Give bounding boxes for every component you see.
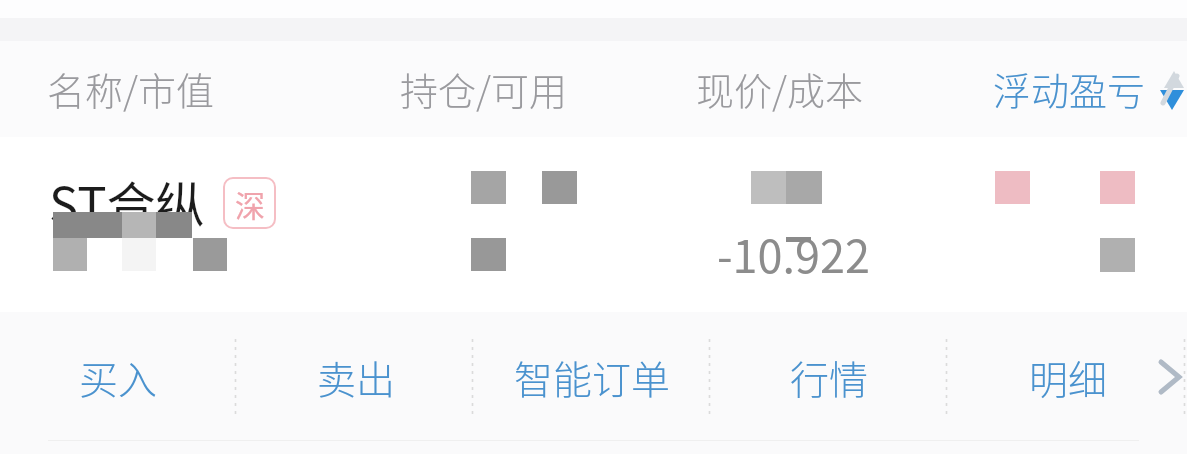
staticText: 卖出	[317, 349, 396, 405]
button[interactable]: 持仓/可用	[363, 45, 640, 135]
staticText: ST合纵	[49, 166, 205, 237]
button[interactable]: 智能订单	[474, 316, 711, 438]
other: Sort by profit	[1160, 70, 1184, 111]
staticText: 明细	[1029, 349, 1108, 405]
staticText: 浮动盈亏	[993, 61, 1146, 116]
button[interactable]: 卖出	[238, 316, 474, 438]
staticText: -10.922	[717, 221, 871, 286]
button[interactable]: 行情	[711, 316, 948, 438]
button[interactable]: 现价/成本	[660, 45, 940, 135]
button[interactable]: 明细	[946, 316, 1187, 438]
button[interactable]: 浮动盈亏	[955, 45, 1187, 135]
button[interactable]: 名称/市值	[14, 45, 380, 135]
button[interactable]: More actions	[1147, 344, 1187, 410]
button[interactable]: 买入	[1, 316, 235, 438]
staticText: 名称/市值	[47, 61, 214, 116]
staticText: 买入	[79, 349, 158, 405]
staticText: 行情	[790, 349, 869, 405]
staticText: 现价/成本	[696, 61, 863, 116]
staticText: 持仓/可用	[400, 61, 567, 116]
staticText: 深	[235, 182, 265, 225]
staticText: 智能订单	[514, 349, 671, 405]
